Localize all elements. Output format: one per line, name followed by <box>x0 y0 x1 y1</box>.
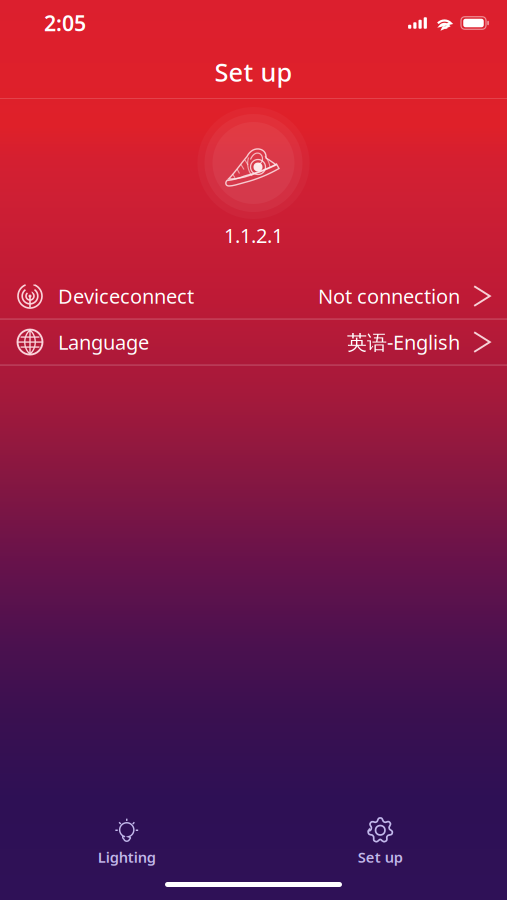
staticText: 英语-English <box>347 329 460 355</box>
staticText: Set up <box>214 55 292 89</box>
button[interactable]: Set up <box>315 814 445 870</box>
button[interactable]: Deviceconnect <box>0 274 507 319</box>
staticText: Language <box>58 329 149 355</box>
staticText: Not connection <box>318 283 460 309</box>
staticText: Deviceconnect <box>58 283 194 309</box>
button[interactable]: Language <box>0 320 507 365</box>
staticText: 1.1.2.1 <box>224 222 283 249</box>
staticText: 2:05 <box>44 9 86 37</box>
button[interactable]: Lighting <box>62 814 192 870</box>
staticText: Lighting <box>98 847 156 867</box>
staticText: Set up <box>358 847 403 867</box>
